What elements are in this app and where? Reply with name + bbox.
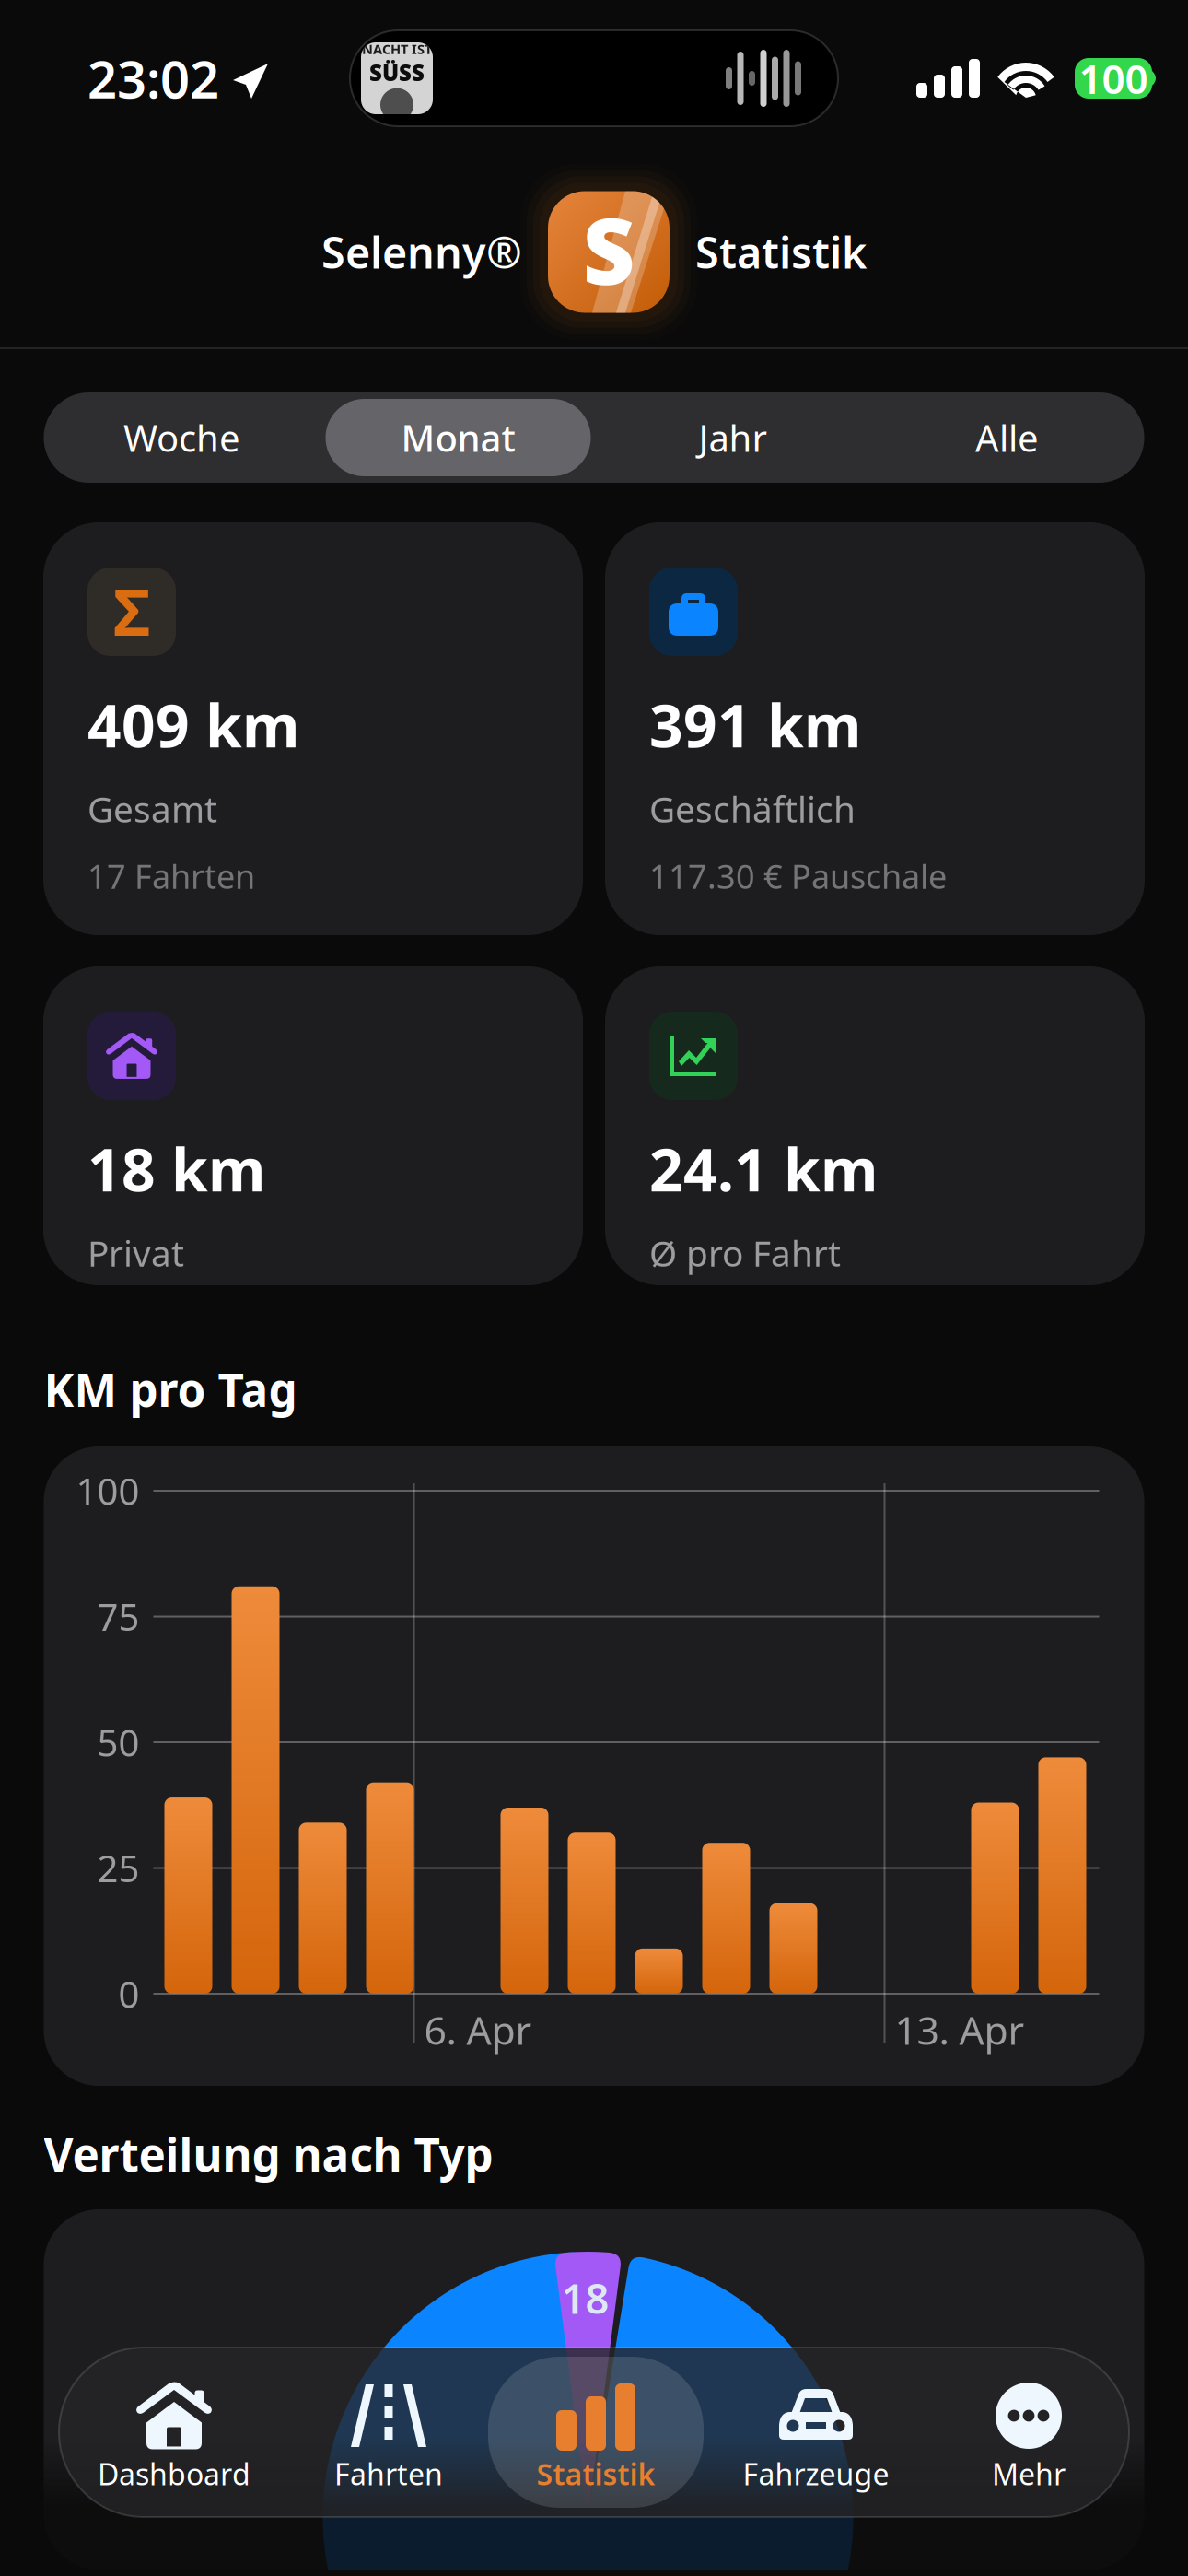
staticText: 17 Fahrten xyxy=(87,854,255,898)
button[interactable]: Fahrzeuge xyxy=(704,2357,928,2508)
staticText: 75 xyxy=(97,1592,140,1641)
staticText: SÜSS xyxy=(369,58,425,87)
staticText: 117.30 € Pauschale xyxy=(649,854,947,898)
staticText: Alle xyxy=(975,413,1039,462)
staticText: Ø pro Fahrt xyxy=(649,1229,841,1276)
staticText: 100 xyxy=(76,1466,140,1515)
button[interactable]: Monat xyxy=(320,392,596,483)
staticText: Woche xyxy=(123,413,240,462)
staticText: Statistik xyxy=(695,223,867,281)
staticText: 100 xyxy=(1079,51,1148,105)
staticText: Selenny® xyxy=(321,223,522,281)
staticText: Monat xyxy=(401,413,515,462)
staticText: 23:02 xyxy=(87,44,219,113)
staticText: Gesamt xyxy=(87,785,217,832)
staticText: Dashboard xyxy=(98,2454,250,2493)
staticText: 13. Apr xyxy=(895,2004,1025,2056)
staticText: 18 km xyxy=(87,1130,265,1208)
button[interactable]: Dashboard xyxy=(59,2357,289,2508)
staticText: 25 xyxy=(97,1843,140,1892)
staticText: NACHT IST xyxy=(362,40,432,58)
button[interactable]: 391 km xyxy=(605,522,1145,935)
button[interactable]: Statistik xyxy=(488,2357,704,2508)
staticText: Σ xyxy=(113,568,150,653)
button[interactable]: Alle xyxy=(870,392,1144,483)
staticText: Jahr xyxy=(699,413,768,462)
staticText: Mehr xyxy=(992,2454,1066,2493)
staticText: 391 km xyxy=(649,685,861,764)
staticText: 0 xyxy=(118,1969,140,2018)
staticText: S xyxy=(582,189,635,310)
staticText: 18 xyxy=(561,2270,609,2325)
staticText: KM pro Tag xyxy=(44,1359,297,1419)
button[interactable]: 24.1 km xyxy=(605,966,1145,1285)
button[interactable]: Fahrten xyxy=(289,2357,488,2508)
staticText: Fahrten xyxy=(334,2454,443,2493)
button[interactable]: Woche xyxy=(44,392,320,483)
button[interactable]: 18 km xyxy=(43,966,583,1285)
staticText: 409 km xyxy=(87,685,299,764)
staticText: 50 xyxy=(97,1718,140,1767)
staticText: 24.1 km xyxy=(649,1130,878,1208)
staticText: 6. Apr xyxy=(424,2004,532,2056)
staticText: Geschäftlich xyxy=(649,785,856,832)
staticText: Fahrzeuge xyxy=(743,2454,889,2493)
button[interactable]: Mehr xyxy=(928,2357,1129,2508)
button[interactable]: Σ xyxy=(43,522,583,935)
button[interactable]: Jahr xyxy=(596,392,870,483)
staticText: Privat xyxy=(87,1229,184,1276)
staticText: Statistik xyxy=(536,2454,655,2493)
staticText: Verteilung nach Typ xyxy=(44,2124,493,2184)
